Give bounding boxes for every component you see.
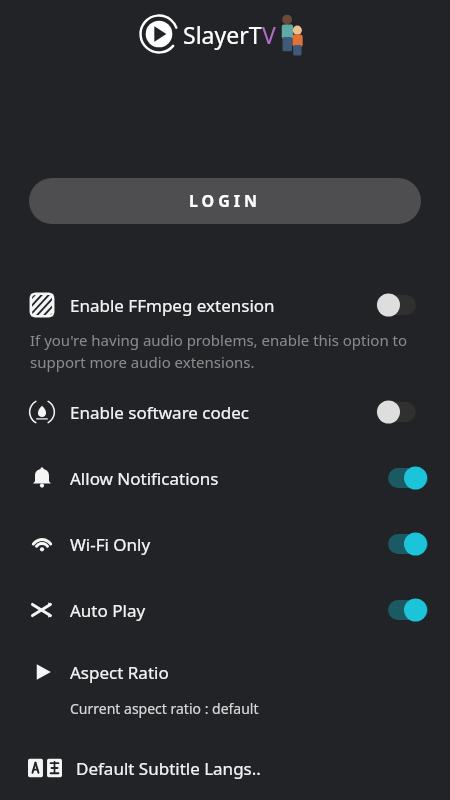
other: Notifications — [28, 464, 56, 492]
staticText: Aspect Ratio — [70, 661, 169, 684]
button[interactable]: Off — [376, 290, 428, 320]
other: Wi-Fi — [28, 530, 56, 558]
button[interactable]: Software codec — [0, 389, 450, 435]
button[interactable]: Auto play — [0, 587, 450, 633]
other: Software codec — [28, 398, 56, 426]
other: FFmpeg — [28, 291, 56, 319]
button[interactable]: Default Subtitle Langs.. — [0, 748, 450, 788]
staticText: Allow Notifications — [70, 467, 376, 490]
button[interactable]: On — [376, 595, 428, 625]
button[interactable]: On — [376, 529, 428, 559]
staticText: SlayerT — [183, 19, 262, 50]
button[interactable]: FFmpeg — [0, 282, 450, 328]
staticText: If you're having audio problems, enable … — [30, 330, 432, 373]
staticText: Wi-Fi Only — [70, 533, 376, 556]
button[interactable]: On — [376, 463, 428, 493]
staticText: Auto Play — [70, 599, 376, 622]
staticText: V — [262, 19, 276, 50]
staticText: Default Subtitle Langs.. — [76, 757, 261, 780]
staticText: Enable software codec — [70, 401, 376, 424]
staticText: Current aspect ratio : default — [70, 699, 259, 718]
button[interactable]: Off — [376, 397, 428, 427]
staticText: LOGIN — [189, 190, 262, 212]
other: Auto play — [28, 596, 56, 624]
staticText: Enable FFmpeg extension — [70, 294, 376, 317]
button[interactable]: Wi-Fi — [0, 521, 450, 567]
button[interactable]: LOGIN — [29, 178, 421, 224]
button[interactable]: Notifications — [0, 455, 450, 501]
button[interactable]: Aspect Ratio — [0, 655, 450, 718]
